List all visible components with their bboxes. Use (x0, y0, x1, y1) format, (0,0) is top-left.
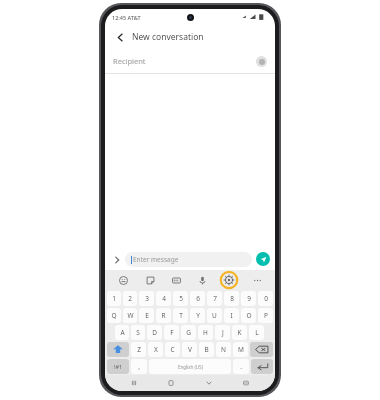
button[interactable]: B (199, 342, 214, 357)
button[interactable]: 9 (241, 291, 256, 306)
button[interactable]: F (164, 325, 179, 340)
button[interactable]: 6 (190, 291, 205, 306)
button[interactable]: O (241, 308, 256, 323)
staticText: L (255, 328, 259, 337)
button[interactable]: Backspace (250, 342, 273, 357)
staticText: Q (111, 311, 117, 320)
button[interactable]: E (139, 308, 154, 323)
staticText: A (120, 328, 125, 337)
button[interactable]: 1 (107, 291, 121, 306)
button[interactable]: Q (107, 308, 121, 323)
staticText: W (127, 311, 134, 320)
staticText: . (240, 362, 242, 371)
staticText: E (145, 311, 149, 320)
staticText: 3 (145, 294, 149, 303)
button[interactable]: 5 (173, 291, 188, 306)
button[interactable]: A (115, 325, 129, 340)
staticText: New conversation (132, 31, 204, 43)
button[interactable]: I (224, 308, 239, 323)
button[interactable]: 3 (139, 291, 154, 306)
button[interactable]: Enter message (125, 252, 252, 267)
button[interactable]: Recents (126, 375, 142, 391)
staticText: , (138, 362, 140, 371)
button[interactable]: N (216, 342, 231, 357)
button[interactable]: Add recipient (256, 56, 267, 67)
button[interactable]: 7 (207, 291, 222, 306)
staticText: 6 (196, 294, 200, 303)
button[interactable]: R (156, 308, 171, 323)
staticText: X (154, 345, 158, 354)
button[interactable]: . (233, 359, 249, 374)
button[interactable]: !#1 (107, 359, 129, 374)
button[interactable]: Stickers (142, 272, 158, 288)
staticText: English (US) (178, 364, 203, 370)
button[interactable]: Send (256, 252, 270, 266)
staticText: 5 (179, 294, 183, 303)
button[interactable]: Expand (110, 253, 123, 266)
button[interactable]: L (249, 325, 264, 340)
staticText: F (170, 328, 174, 337)
button[interactable]: Hide keyboard (201, 375, 217, 391)
button[interactable]: Shift (107, 342, 129, 357)
staticText: Y (196, 311, 200, 320)
button[interactable]: S (131, 325, 145, 340)
staticText: I (230, 311, 233, 320)
button[interactable]: Back (105, 25, 275, 49)
staticText: Recipient (113, 56, 146, 66)
button[interactable]: Switch keyboard (238, 375, 254, 391)
button[interactable]: 2 (123, 291, 137, 306)
button[interactable]: , (131, 359, 147, 374)
staticText: Enter message (133, 255, 179, 264)
staticText: 7 (213, 294, 217, 303)
staticText: 12:45 AT&T (112, 14, 141, 21)
button[interactable]: C (165, 342, 180, 357)
staticText: 9 (247, 294, 251, 303)
staticText: 4 (162, 294, 166, 303)
button[interactable]: Recipient (105, 49, 275, 73)
staticText: !#1 (114, 363, 123, 370)
staticText: U (212, 311, 217, 320)
button[interactable]: J (215, 325, 230, 340)
staticText: V (188, 345, 192, 354)
button[interactable]: Keyboard settings (220, 271, 238, 289)
button[interactable]: G (181, 325, 196, 340)
button[interactable]: D (147, 325, 162, 340)
button[interactable]: P (258, 308, 273, 323)
button[interactable]: Emoji (115, 272, 131, 288)
button[interactable]: 0 (258, 291, 273, 306)
staticText: Z (137, 345, 141, 354)
button[interactable]: English (US) (149, 359, 231, 374)
staticText: H (203, 328, 208, 337)
staticText: G (186, 328, 191, 337)
button[interactable]: Z (131, 342, 146, 357)
button[interactable]: Back (113, 30, 127, 44)
button[interactable]: 8 (224, 291, 239, 306)
button[interactable]: U (207, 308, 222, 323)
staticText: S (136, 328, 140, 337)
staticText: M (238, 345, 244, 354)
button[interactable]: V (182, 342, 197, 357)
button[interactable]: GIF (168, 272, 184, 288)
staticText: 8 (230, 294, 234, 303)
staticText: C (170, 345, 175, 354)
button[interactable]: W (123, 308, 137, 323)
staticText: D (152, 328, 157, 337)
button[interactable]: Voice input (194, 272, 210, 288)
button[interactable]: Enter (251, 359, 273, 374)
staticText: O (246, 311, 252, 320)
staticText: 0 (264, 294, 268, 303)
staticText: N (221, 345, 226, 354)
button[interactable]: K (232, 325, 247, 340)
button[interactable]: More options (249, 272, 265, 288)
staticText: J (222, 328, 224, 337)
button[interactable]: Y (190, 308, 205, 323)
button[interactable]: 4 (156, 291, 171, 306)
button[interactable]: H (198, 325, 213, 340)
staticText: B (204, 345, 209, 354)
staticText: K (237, 328, 242, 337)
staticText: P (264, 311, 268, 320)
button[interactable]: Home (163, 375, 179, 391)
button[interactable]: T (173, 308, 188, 323)
button[interactable]: X (148, 342, 163, 357)
button[interactable]: M (233, 342, 248, 357)
